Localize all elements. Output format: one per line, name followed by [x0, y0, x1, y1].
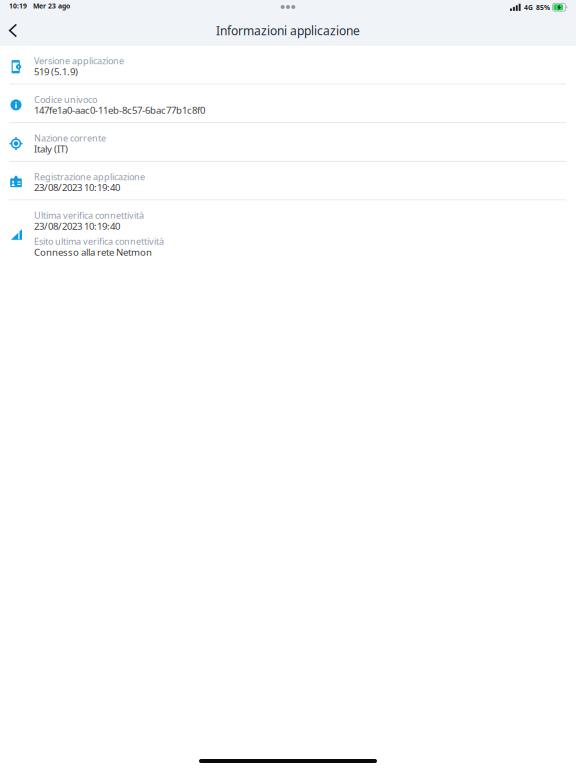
button[interactable]: Nazione corrente	[0, 123, 576, 161]
staticText: Versione applicazione	[34, 55, 124, 67]
button[interactable]: Versione applicazione	[0, 46, 576, 84]
staticText: Connesso alla rete Netmon	[34, 245, 152, 259]
staticText: 85%	[536, 3, 550, 12]
staticText: Italy (IT)	[34, 142, 68, 155]
staticText: 23/08/2023 10:19:40	[34, 219, 120, 232]
staticText: Mer 23 ago	[33, 1, 70, 10]
staticText: 4G	[524, 3, 533, 12]
button[interactable]: Codice univoco	[0, 85, 576, 122]
staticText: 23/08/2023 10:19:40	[34, 181, 120, 194]
staticText: Codice univoco	[34, 93, 97, 105]
staticText: Registrazione applicazione	[34, 170, 145, 183]
staticText: Nazione corrente	[34, 132, 106, 144]
staticText: 519 (5.1.9)	[34, 65, 78, 78]
staticText: Esito ultima verifica connettività	[34, 235, 164, 247]
button[interactable]: Ultima verifica connettività	[0, 200, 576, 264]
staticText: Ultima verifica connettività	[34, 209, 144, 221]
button[interactable]: Registrazione applicazione	[0, 162, 576, 199]
staticText: 147fe1a0-aac0-11eb-8c57-6bac77b1c8f0	[34, 104, 205, 117]
staticText: 10:19	[9, 1, 27, 10]
staticText: Informazioni applicazione	[216, 22, 360, 39]
button[interactable]: Indietro	[0, 15, 26, 46]
